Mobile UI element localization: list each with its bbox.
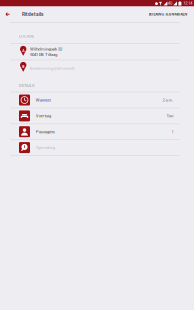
staticText: A [22,49,24,53]
button[interactable]: A [0,44,194,59]
staticText: Wilhelminapark 32 [30,46,62,51]
staticText: Taxi [166,113,173,118]
staticText: 5041 EB Tilburg [30,52,57,57]
button[interactable]: Voertuig [0,108,194,123]
button[interactable]: Wanneer [0,92,194,108]
staticText: 1 [171,129,173,134]
button[interactable]: BOEKING AANMAKEN [148,6,194,22]
staticText: LOCATIE [19,34,34,39]
staticText: 2 a.m. [162,97,173,102]
staticText: Bestemming (niet vereist) [30,66,74,71]
staticText: Ritdetails [22,11,43,17]
staticText: Opmerking [36,145,55,150]
staticText: B [22,65,24,69]
staticText: Passagiers [36,129,55,134]
button[interactable]: B [0,60,194,76]
staticText: Wanneer [36,97,51,102]
button[interactable]: Back [0,6,15,22]
staticText: DETAILS [19,83,34,88]
button[interactable]: Opmerking [0,140,194,155]
staticText: BOEKING AANMAKEN [148,12,187,16]
button[interactable]: Passagiers [0,124,194,139]
staticText: Voertuig [36,113,51,118]
staticText: 4G [168,1,173,6]
staticText: 12:14 [183,1,192,6]
